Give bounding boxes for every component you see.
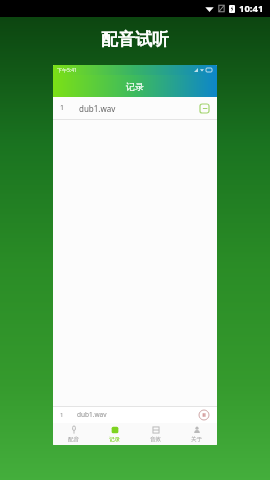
staticText: 记录: [109, 436, 120, 443]
staticText: 配音试听: [101, 29, 169, 50]
button[interactable]: Export: [198, 102, 210, 114]
staticText: 下午5:41: [57, 67, 77, 74]
staticText: 1: [60, 103, 65, 113]
button[interactable]: 配音: [53, 423, 94, 445]
staticText: 音效: [150, 436, 161, 443]
staticText: 10:41: [239, 2, 264, 15]
button[interactable]: 1: [53, 97, 217, 119]
button[interactable]: 1: [53, 406, 217, 423]
button[interactable]: 关于: [176, 423, 217, 445]
button[interactable]: 记录: [94, 423, 135, 445]
staticText: dub1.wav: [79, 103, 116, 114]
staticText: 关于: [191, 436, 202, 443]
staticText: 配音: [68, 436, 79, 443]
staticText: 1: [60, 411, 64, 419]
button[interactable]: 音效: [135, 423, 176, 445]
staticText: 记录: [126, 81, 144, 92]
staticText: dub1.wav: [77, 410, 107, 419]
button[interactable]: Pause: [198, 409, 210, 421]
